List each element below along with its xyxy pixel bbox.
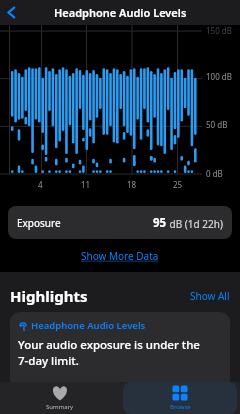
staticText: Headphone Audio Levels	[31, 319, 146, 332]
button[interactable]: Show All	[190, 289, 230, 303]
staticText: 11	[81, 179, 91, 190]
button[interactable]: Back	[0, 0, 22, 25]
staticText: 4	[38, 179, 43, 190]
staticText: 25	[173, 179, 183, 190]
staticText: 100 dB	[206, 71, 232, 82]
staticText: Highlights	[10, 286, 88, 306]
staticText: 150 dB	[206, 25, 232, 36]
staticText: 0 dB	[206, 168, 223, 179]
staticText: Summary	[46, 403, 74, 411]
staticText: Your audio exposure is under the 7-day l…	[18, 337, 200, 369]
staticText: Browse	[170, 403, 191, 411]
button[interactable]: Show More Data	[81, 249, 159, 263]
staticText: Headphone Audio Levels	[54, 5, 187, 20]
button[interactable]: Browse	[123, 382, 237, 414]
button[interactable]: Summary	[3, 382, 117, 414]
staticText: 18	[127, 179, 137, 190]
staticText: 95	[153, 215, 167, 231]
staticText: Exposure	[17, 216, 61, 230]
staticText: 50 dB	[206, 119, 228, 130]
staticText: dB (1d 22h)	[167, 217, 223, 231]
button[interactable]: Headphone Audio Levels	[10, 312, 230, 391]
button[interactable]: Exposure	[8, 206, 232, 239]
